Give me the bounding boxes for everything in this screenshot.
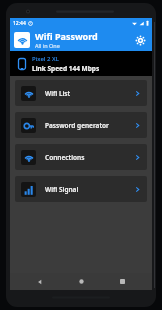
staticText: Wifi Signal (45, 185, 134, 194)
staticText: 12:44 (13, 20, 26, 27)
staticText: Connections (45, 153, 134, 162)
staticText: Pixel 2 XL (32, 55, 59, 63)
button[interactable]: Password generator (15, 112, 147, 138)
button[interactable]: Wifi Signal (15, 176, 147, 202)
button[interactable]: Connections (15, 144, 147, 170)
staticText: Wifi Password (35, 30, 98, 42)
button[interactable]: Back (29, 273, 51, 290)
staticText: Link Speed 144 Mbps (32, 64, 100, 73)
staticText: All in One (35, 42, 60, 49)
button[interactable]: Settings (132, 32, 148, 48)
button[interactable]: Wifi List (15, 80, 147, 106)
button[interactable]: Home (70, 273, 92, 290)
staticText: Wifi List (45, 89, 134, 98)
staticText: Password generator (45, 121, 134, 130)
button[interactable]: Recents (111, 273, 133, 290)
